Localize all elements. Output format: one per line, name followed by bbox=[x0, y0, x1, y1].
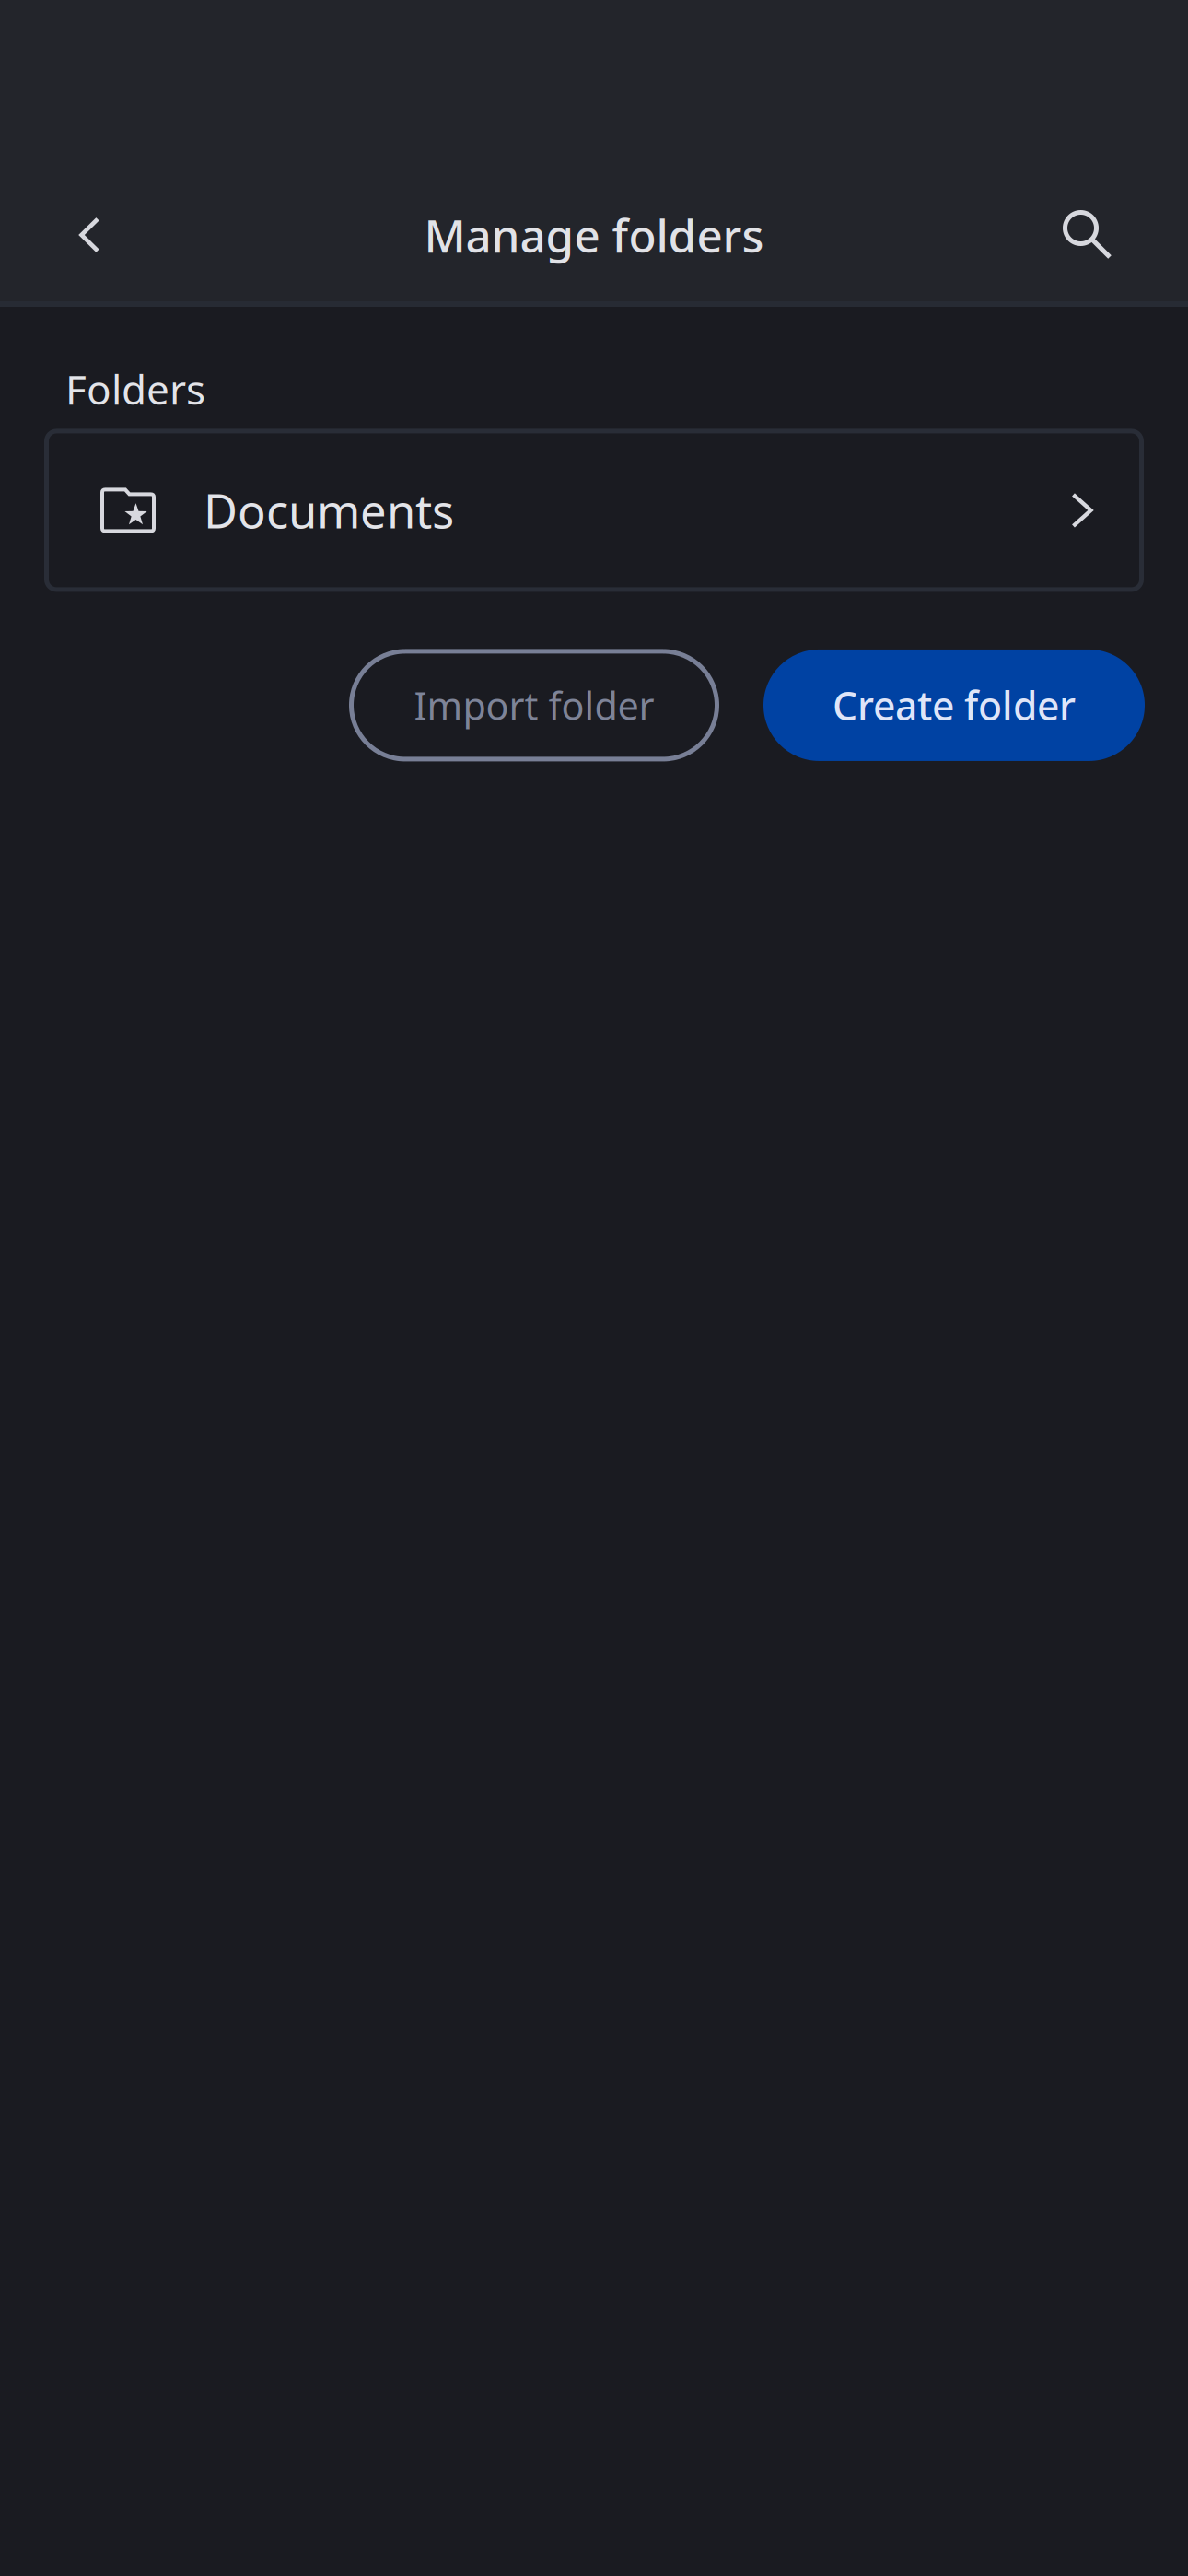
staticText: Create folder bbox=[833, 679, 1076, 731]
staticText: Import folder bbox=[414, 680, 654, 731]
staticText: Folders bbox=[65, 362, 205, 416]
button[interactable]: Create folder bbox=[763, 649, 1145, 761]
button[interactable]: Search bbox=[1043, 191, 1132, 279]
staticText: Manage folders bbox=[424, 205, 764, 265]
button[interactable]: Import folder bbox=[349, 649, 719, 761]
staticText: Documents bbox=[204, 479, 454, 541]
button[interactable]: Back bbox=[45, 191, 134, 279]
button[interactable]: Documents bbox=[44, 429, 1144, 592]
